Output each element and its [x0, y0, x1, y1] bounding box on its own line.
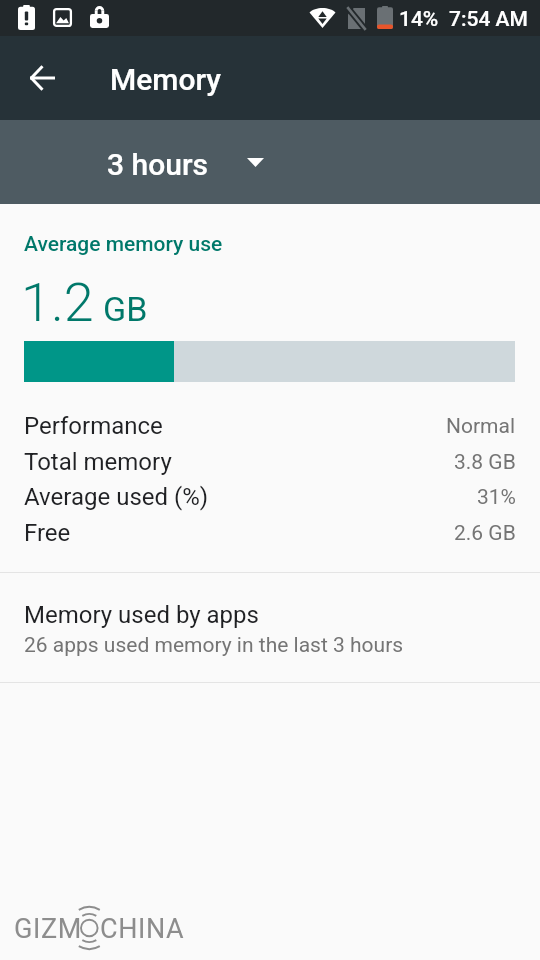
staticText: Memory used by apps — [24, 601, 259, 629]
button[interactable]: Memory used by apps — [0, 573, 540, 682]
staticText: 31% — [477, 485, 516, 510]
staticText: Average used (%) — [24, 483, 209, 511]
staticText: Memory — [110, 62, 222, 97]
staticText: 3.8 GB — [454, 450, 516, 475]
staticText: Performance — [24, 412, 163, 440]
button[interactable]: Average used (%) — [0, 481, 540, 517]
staticText: Free — [24, 519, 71, 547]
staticText: Average memory use — [24, 232, 223, 257]
button[interactable]: Navigate up — [18, 54, 66, 102]
staticText: CHINA — [100, 913, 185, 945]
staticText: 1.2 — [21, 271, 94, 334]
staticText: 14% — [399, 7, 439, 32]
staticText: Normal — [446, 414, 516, 439]
staticText: 3 hours — [107, 147, 208, 182]
staticText: 7:54 AM — [449, 7, 528, 32]
button[interactable]: Total memory — [0, 446, 540, 482]
staticText: 26 apps used memory in the last 3 hours — [24, 633, 404, 658]
staticText: GB — [103, 289, 148, 329]
button[interactable]: Performance — [0, 410, 540, 446]
button[interactable]: 3 hours — [0, 120, 540, 204]
button[interactable]: Free — [0, 517, 540, 553]
staticText: GIZM — [14, 913, 82, 945]
staticText: 2.6 GB — [454, 521, 516, 546]
other: Change time range — [247, 158, 264, 167]
staticText: Total memory — [24, 448, 172, 476]
